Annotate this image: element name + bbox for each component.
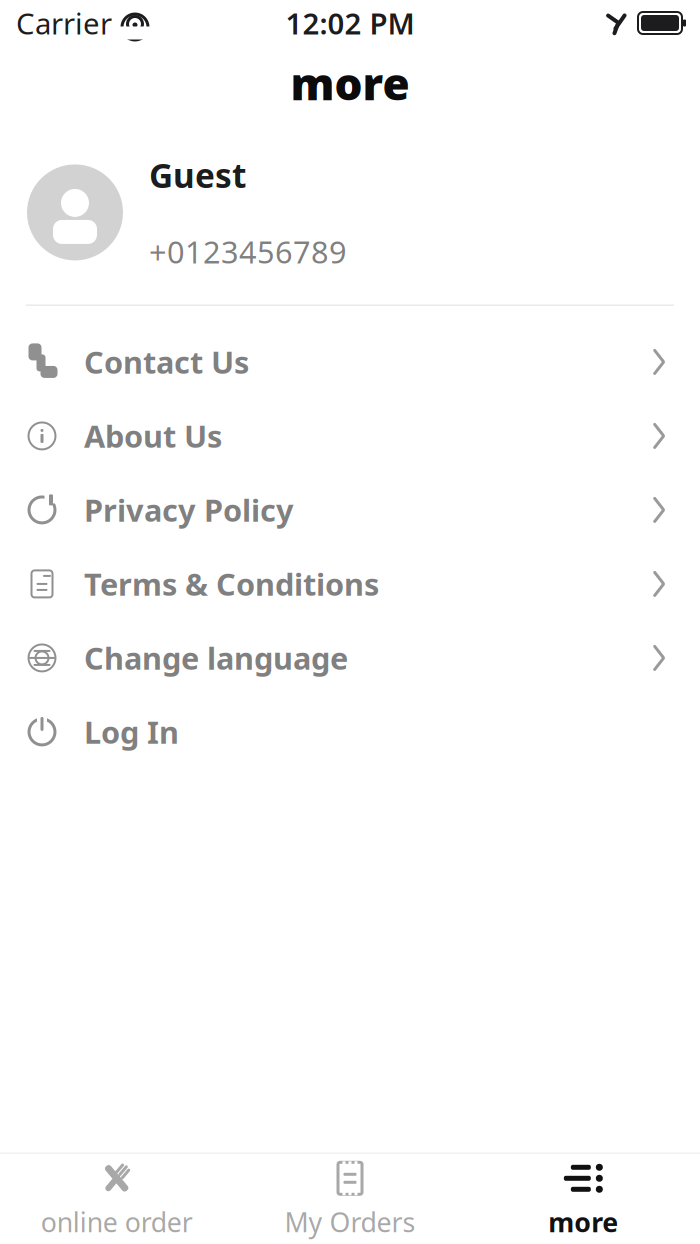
staticText: more (290, 54, 409, 112)
button[interactable]: Log In (0, 695, 700, 769)
button[interactable]: Privacy Policy (0, 473, 700, 547)
button[interactable]: Change language (0, 621, 700, 695)
staticText: 12:02 PM (285, 3, 414, 42)
staticText: Carrier (16, 3, 112, 42)
staticText: My Orders (284, 1204, 415, 1240)
button[interactable]: About Us (0, 399, 700, 473)
button[interactable]: online order (0, 1154, 233, 1244)
button[interactable]: My Orders (233, 1154, 467, 1244)
staticText: online order (41, 1204, 193, 1240)
staticText: Privacy Policy (84, 490, 294, 530)
staticText: Log In (84, 712, 179, 752)
staticText: Terms & Conditions (84, 564, 379, 604)
staticText: Contact Us (84, 342, 249, 382)
button[interactable]: more (467, 1154, 700, 1244)
staticText: more (548, 1204, 618, 1240)
button[interactable]: Contact Us (0, 325, 700, 399)
staticText: Change language (84, 638, 348, 678)
staticText: +0123456789 (149, 231, 347, 272)
staticText: Guest (149, 153, 246, 197)
staticText: About Us (84, 416, 222, 456)
button[interactable]: Terms & Conditions (0, 547, 700, 621)
